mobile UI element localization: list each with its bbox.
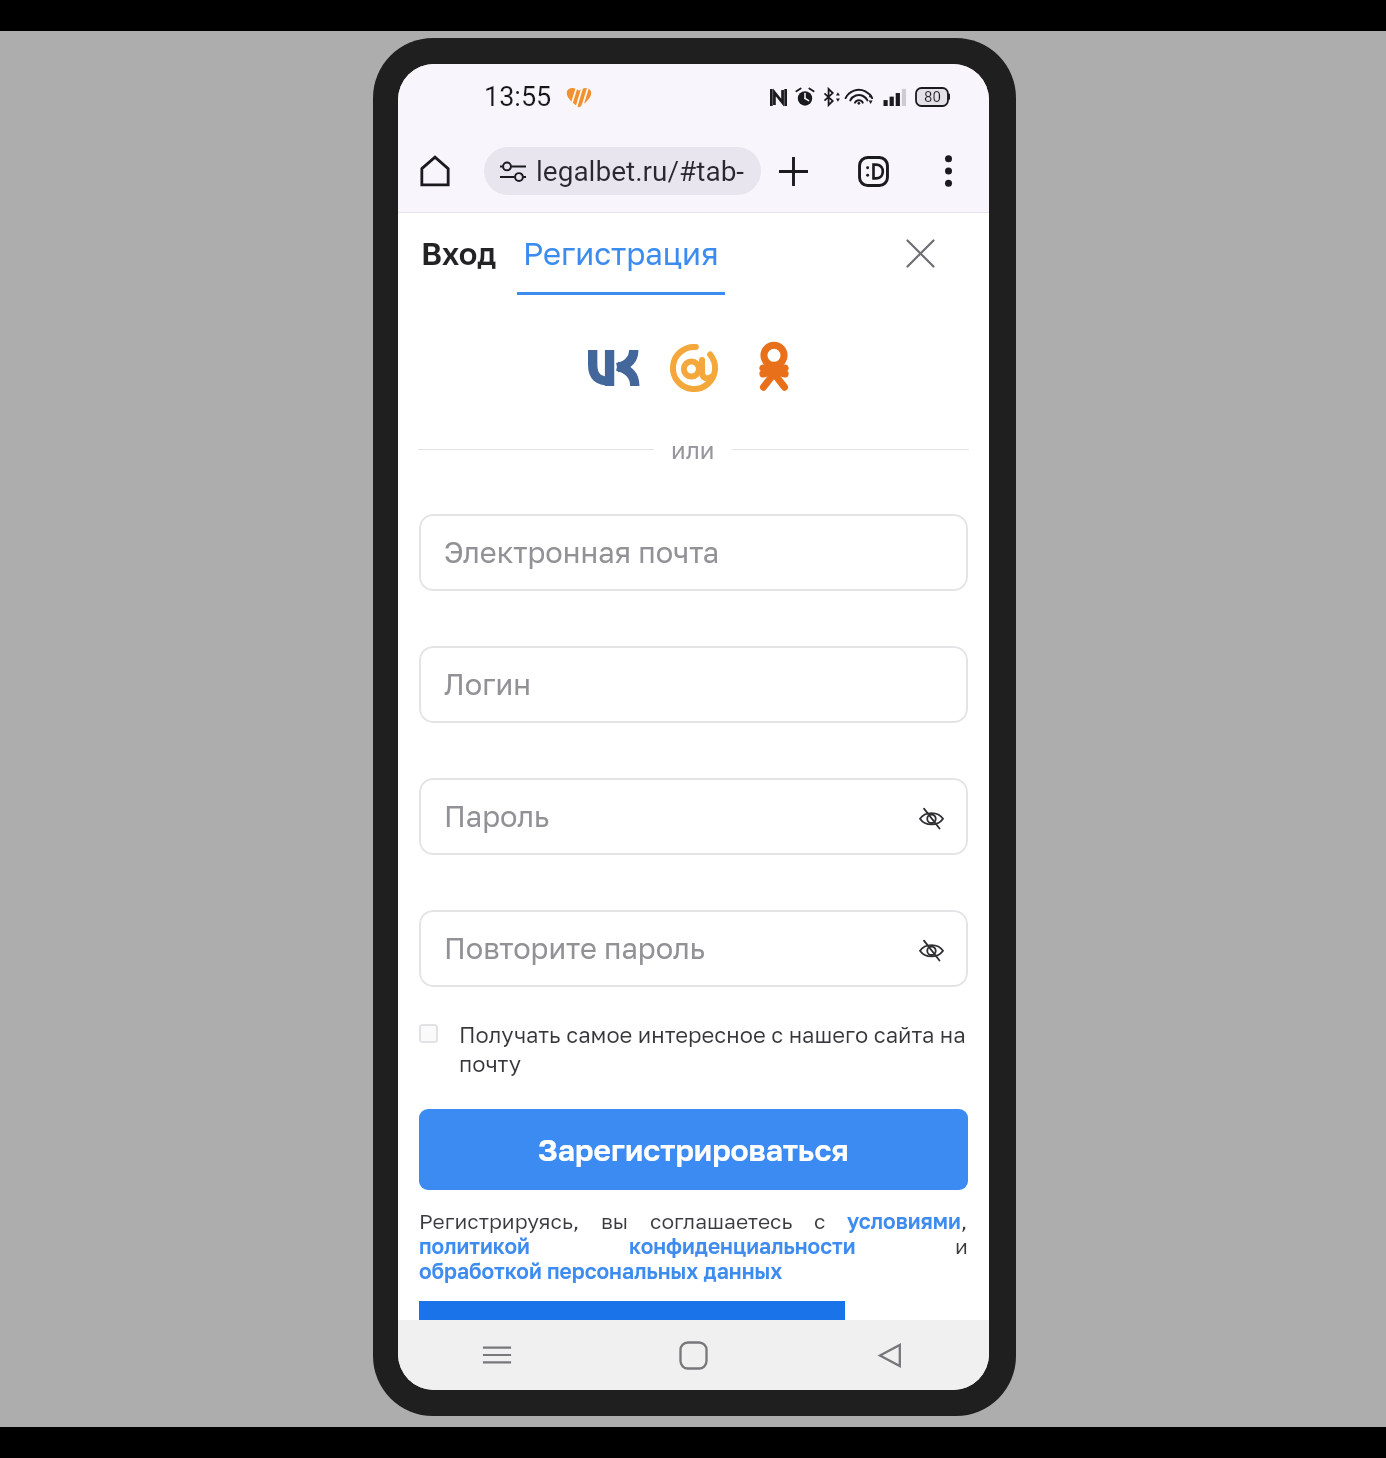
button[interactable]: Recents (398, 1320, 595, 1390)
staticText: вы (601, 1208, 629, 1233)
button[interactable]: Close (892, 225, 948, 281)
staticText: Регистрация (523, 235, 719, 272)
button[interactable]: Odnoklassniki (734, 335, 814, 401)
button[interactable]: Пароль (419, 778, 968, 855)
staticText: Повторите пароль (444, 931, 706, 966)
other: Show password (919, 806, 944, 828)
staticText: 13:55 (484, 81, 552, 113)
staticText: 80 (924, 88, 941, 106)
staticText: соглашаетесь (650, 1208, 793, 1233)
staticText: Зарегистрироваться (538, 1132, 849, 1168)
button[interactable]: Получать самое интересное с нашего сайта… (419, 1021, 968, 1077)
button[interactable]: Регистрация (517, 231, 725, 295)
other: Show password (919, 938, 944, 960)
staticText: с (814, 1208, 826, 1233)
staticText: политикой (419, 1233, 530, 1258)
staticText: Получать самое интересное с нашего сайта… (459, 1021, 968, 1077)
button[interactable]: Логин (419, 646, 968, 723)
button[interactable]: More options (923, 146, 973, 196)
button[interactable]: Вход (415, 231, 503, 276)
button[interactable]: Повторите пароль (419, 910, 968, 987)
staticText: конфиденциальности (629, 1233, 856, 1258)
staticText: Вход (421, 235, 497, 272)
staticText: обработкой персональных данных (419, 1258, 783, 1283)
button[interactable]: конфиденциальности (629, 1233, 856, 1258)
button[interactable]: Электронная почта (419, 514, 968, 591)
staticText: Пароль (444, 799, 550, 834)
staticText: и (955, 1233, 968, 1258)
button[interactable]: условиями (847, 1208, 961, 1233)
button[interactable]: обработкой персональных данных (419, 1258, 783, 1283)
staticText: legalbet.ru/#tab- (536, 155, 745, 188)
button[interactable]: Mail.ru (654, 335, 734, 401)
staticText: Электронная почта (444, 535, 720, 570)
button[interactable]: New tab (765, 143, 821, 199)
button[interactable]: VK (574, 335, 654, 401)
staticText: Логин (444, 667, 531, 702)
button[interactable]: Зарегистрироваться (419, 1109, 968, 1190)
button[interactable]: Home (595, 1320, 792, 1390)
staticText: или (671, 435, 715, 464)
button[interactable]: Home (407, 143, 463, 199)
button[interactable]: политикой (419, 1233, 530, 1258)
button[interactable]: legalbet.ru/#tab- (484, 147, 761, 195)
staticText: условиями (847, 1208, 961, 1233)
button[interactable]: Back (792, 1320, 989, 1390)
staticText: Регистрируясь, (419, 1208, 580, 1233)
staticText: , (961, 1208, 968, 1233)
button[interactable]: Tabs (845, 143, 901, 199)
